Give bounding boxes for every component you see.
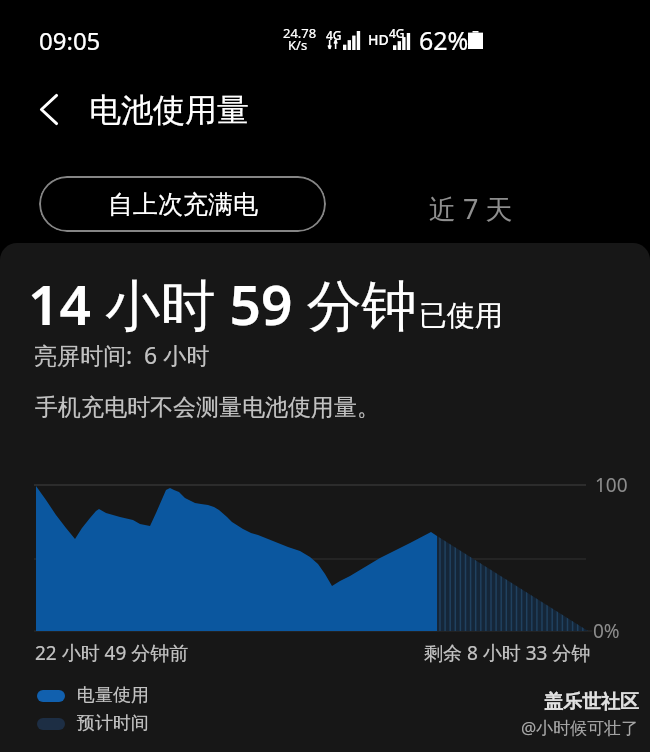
staticText: 24.78 <box>283 24 317 42</box>
staticText: 22 小时 49 分钟前 <box>35 640 189 666</box>
staticText: 4G <box>389 25 405 41</box>
button[interactable]: 自上次充满电 <box>39 176 326 232</box>
staticText: 0% <box>593 618 620 644</box>
staticText: 电量使用 <box>77 684 149 707</box>
staticText: 09:05 <box>39 24 101 57</box>
staticText: 亮屏时间: 6 小时 <box>34 339 210 370</box>
staticText: 62% <box>419 23 469 57</box>
staticText: 4G <box>326 27 342 43</box>
staticText: 14 小时 59 分钟 <box>28 266 417 341</box>
staticText: K/s <box>288 36 308 54</box>
staticText: 盖乐世社区 <box>544 690 639 714</box>
staticText: 近 7 天 <box>429 190 513 227</box>
staticText: HD <box>368 30 389 49</box>
button[interactable]: Back <box>20 83 78 135</box>
staticText: 已使用 <box>419 298 503 333</box>
staticText: 剩余 8 小时 33 分钟 <box>424 640 591 666</box>
button[interactable]: 近 7 天 <box>417 182 525 235</box>
staticText: 手机充电时不会测量电池使用量。 <box>35 393 380 422</box>
staticText: 预计时间 <box>77 712 149 735</box>
staticText: 自上次充满电 <box>108 189 258 220</box>
staticText: 电池使用量 <box>89 90 249 130</box>
staticText: 100 <box>595 472 628 498</box>
staticText: @小时候可壮了 <box>521 716 639 739</box>
